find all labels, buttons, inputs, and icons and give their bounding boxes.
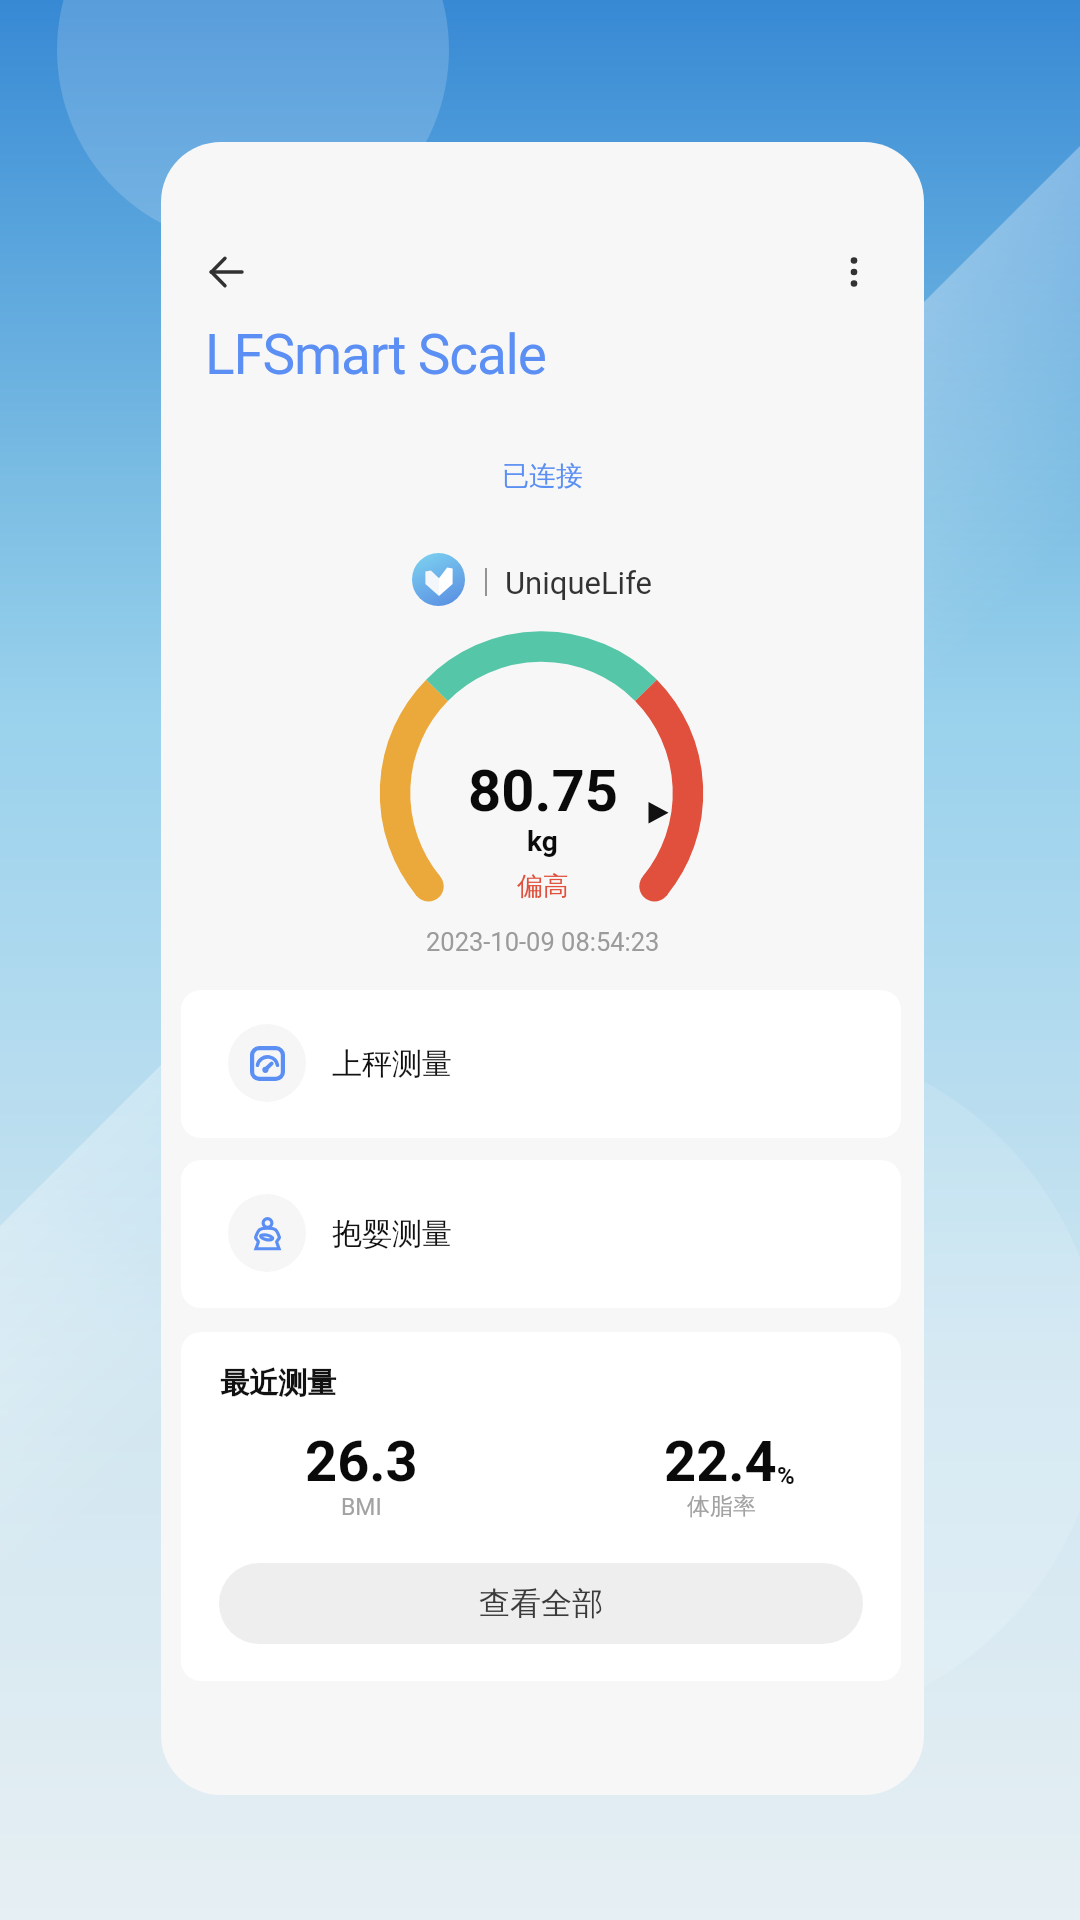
staticText: 最近测量 [220, 1365, 336, 1402]
button[interactable]: More options [810, 228, 898, 316]
staticText: 22.4 [664, 1429, 777, 1495]
staticText: 上秤测量 [332, 1045, 452, 1083]
staticText: 80.75 [468, 757, 618, 825]
button[interactable]: 查看全部 [219, 1563, 863, 1644]
staticText: 2023-10-09 08:54:23 [426, 927, 660, 957]
staticText: BMI [341, 1494, 382, 1521]
staticText: UniqueLife [505, 565, 652, 601]
button[interactable]: Back [184, 228, 272, 316]
button[interactable]: 上秤测量 [181, 990, 901, 1138]
staticText: 偏高 [517, 870, 569, 903]
staticText: 抱婴测量 [332, 1215, 452, 1253]
staticText: 查看全部 [479, 1584, 603, 1623]
staticText: 体脂率 [687, 1492, 756, 1521]
staticText: kg [527, 825, 558, 858]
staticText: % [777, 1462, 795, 1490]
staticText: 已连接 [502, 459, 583, 493]
button[interactable]: 抱婴测量 [181, 1160, 901, 1308]
staticText: 26.3 [305, 1429, 418, 1495]
staticText: LFSmart Scale [205, 323, 546, 387]
